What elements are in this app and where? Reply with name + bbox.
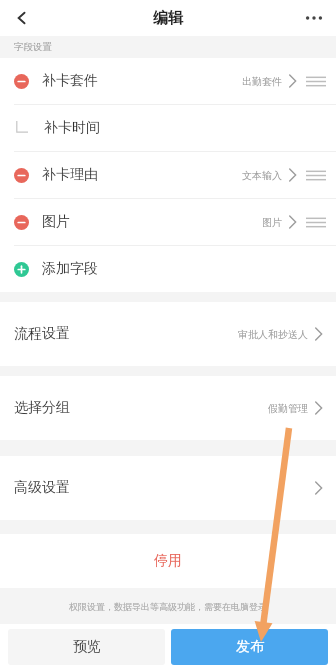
button[interactable]: Back [0, 0, 44, 36]
button[interactable]: 高级设置 [0, 456, 336, 520]
staticText: 选择分组 [14, 399, 70, 417]
button[interactable]: 发布 [171, 629, 328, 665]
staticText: 预览 [73, 638, 101, 656]
staticText: 权限设置，数据导出等高级功能，需要在电脑登录 [69, 601, 267, 612]
staticText: 停用 [154, 552, 182, 570]
button[interactable]: 补卡时间 [0, 105, 336, 151]
staticText: 补卡时间 [44, 119, 100, 137]
button[interactable]: 补卡理由 [0, 152, 336, 198]
staticText: 图片 [42, 213, 70, 231]
staticText: 发布 [236, 638, 264, 656]
staticText: 出勤套件 [242, 75, 282, 88]
button[interactable]: 添加字段 [0, 246, 336, 292]
staticText: 图片 [262, 216, 282, 229]
staticText: 字段设置 [14, 41, 52, 53]
staticText: 编辑 [153, 9, 183, 28]
button[interactable]: More options [292, 0, 336, 36]
button[interactable]: 补卡套件 [0, 58, 336, 104]
staticText: 添加字段 [42, 260, 98, 278]
staticText: 流程设置 [14, 325, 70, 343]
button[interactable]: 停用 [0, 534, 336, 588]
staticText: 高级设置 [14, 479, 70, 497]
staticText: 文本输入 [242, 169, 282, 182]
staticText: 审批人和抄送人 [238, 328, 308, 341]
button[interactable]: 流程设置 [0, 302, 336, 366]
staticText: 假勤管理 [268, 402, 308, 415]
button[interactable]: 图片 [0, 199, 336, 245]
button[interactable]: 选择分组 [0, 376, 336, 440]
staticText: 补卡理由 [42, 166, 98, 184]
button[interactable]: 预览 [8, 629, 165, 665]
staticText: 补卡套件 [42, 72, 98, 90]
